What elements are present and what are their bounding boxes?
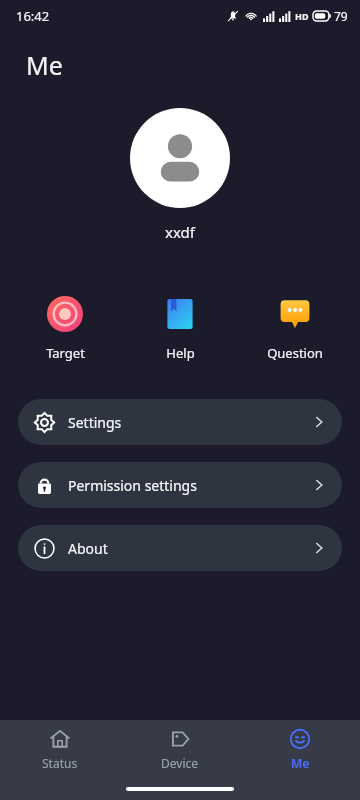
button[interactable]: Target [20,294,110,364]
staticText: Me [291,755,310,771]
staticText: Target [46,344,85,362]
button[interactable]: Device [120,720,240,778]
button[interactable]: About [18,525,342,571]
staticText: Question [267,344,323,362]
staticText: Status [42,755,78,771]
staticText: Me [26,48,63,82]
staticText: 16:42 [16,7,50,25]
button[interactable]: Question [250,294,340,364]
button[interactable]: Me [240,720,360,778]
button[interactable]: Status [0,720,120,778]
button[interactable] [130,108,230,208]
button[interactable]: Help [135,294,225,364]
button[interactable]: Settings [18,399,342,445]
staticText: Permission settings [68,476,197,495]
staticText: Settings [68,413,122,432]
staticText: HD [295,10,309,22]
button[interactable]: Permission settings [18,462,342,508]
staticText: Device [161,755,199,771]
staticText: 79 [334,8,348,24]
staticText: Help [166,344,195,362]
staticText: About [68,539,108,558]
staticText: xxdf [0,222,360,242]
